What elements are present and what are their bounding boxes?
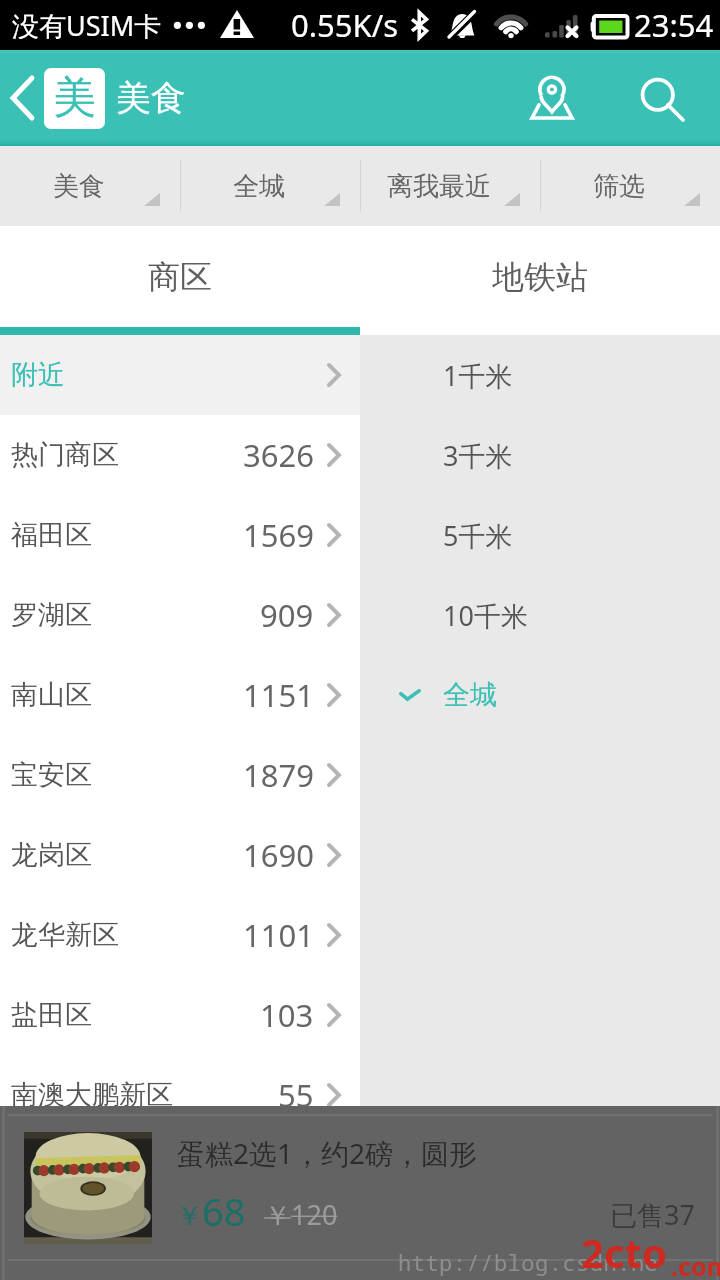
staticText: ￥ [176,1200,202,1233]
staticText: 103 [260,994,314,1036]
button[interactable]: 南山区 [0,655,360,735]
staticText: 筛选 [593,170,645,203]
button[interactable]: 全城 [360,655,720,735]
staticText: 罗湖区 [11,598,92,632]
button[interactable]: 福田区 [0,495,360,575]
staticText: 1千米 [443,357,513,394]
button[interactable]: 热门商区 [0,415,360,495]
staticText: 美食 [116,76,186,120]
button[interactable]: 龙岗区 [0,815,360,895]
button[interactable]: 离我最近 [360,146,540,226]
staticText: 909 [260,594,314,636]
staticText: ￥120 [264,1196,338,1233]
staticText: 23:54 [634,4,714,46]
button[interactable]: 龙华新区 [0,895,360,975]
staticText: 龙华新区 [11,918,119,952]
staticText: 1569 [243,514,314,556]
button[interactable]: 1千米 [360,335,720,415]
staticText: 龙岗区 [11,838,92,872]
button[interactable]: 10千米 [360,575,720,655]
staticText: 2cto [581,1225,667,1279]
staticText: 3626 [243,434,314,476]
staticText: 离我最近 [387,170,491,203]
button[interactable]: 全城 [180,146,360,226]
button[interactable]: 筛选 [540,146,720,226]
button[interactable]: 美食 [0,146,180,226]
staticText: 地铁站 [492,257,588,297]
staticText: 68 [202,1185,246,1237]
staticText: 0.55K/s [291,4,399,46]
staticText: 1151 [243,674,314,716]
button[interactable]: 5千米 [360,495,720,575]
staticText: 已售37 [610,1196,695,1233]
staticText: 美食 [53,170,105,203]
staticText: 全城 [443,678,497,712]
button[interactable]: 附近 [0,335,360,415]
staticText: http://blog.csdn.ne [398,1247,659,1277]
staticText: 美 [53,71,96,125]
staticText: 宝安区 [11,758,92,792]
staticText: 1101 [243,914,314,956]
button[interactable]: 盐田区 [0,975,360,1055]
staticText: 盐田区 [11,998,92,1032]
button[interactable]: Search [619,50,707,146]
button[interactable]: 南澳大鹏新区 [0,1055,360,1135]
button[interactable]: 宝安区 [0,735,360,815]
staticText: 10千米 [443,597,528,634]
button[interactable]: 商区 [0,226,360,327]
staticText: 蛋糕2选1，约2磅，圆形 [177,1134,478,1172]
staticText: 3千米 [443,437,513,474]
button[interactable]: 罗湖区 [0,575,360,655]
staticText: 商区 [148,257,212,297]
button[interactable]: 3千米 [360,415,720,495]
staticText: 5千米 [443,517,513,554]
staticText: .com [671,1249,720,1280]
staticText: 南山区 [11,678,92,712]
staticText: 1690 [243,834,314,876]
staticText: 福田区 [11,518,92,552]
staticText: 热门商区 [11,438,119,472]
button[interactable]: Back [0,50,44,146]
staticText: 全城 [233,170,285,203]
staticText: 附近 [11,358,65,392]
staticText: 南澳大鹏新区 [11,1078,173,1112]
staticText: 1879 [243,754,314,796]
staticText: 55 [278,1074,314,1116]
staticText: 没有USIM卡 [12,7,162,44]
button[interactable]: Map [508,50,596,146]
button[interactable]: 地铁站 [360,226,720,327]
